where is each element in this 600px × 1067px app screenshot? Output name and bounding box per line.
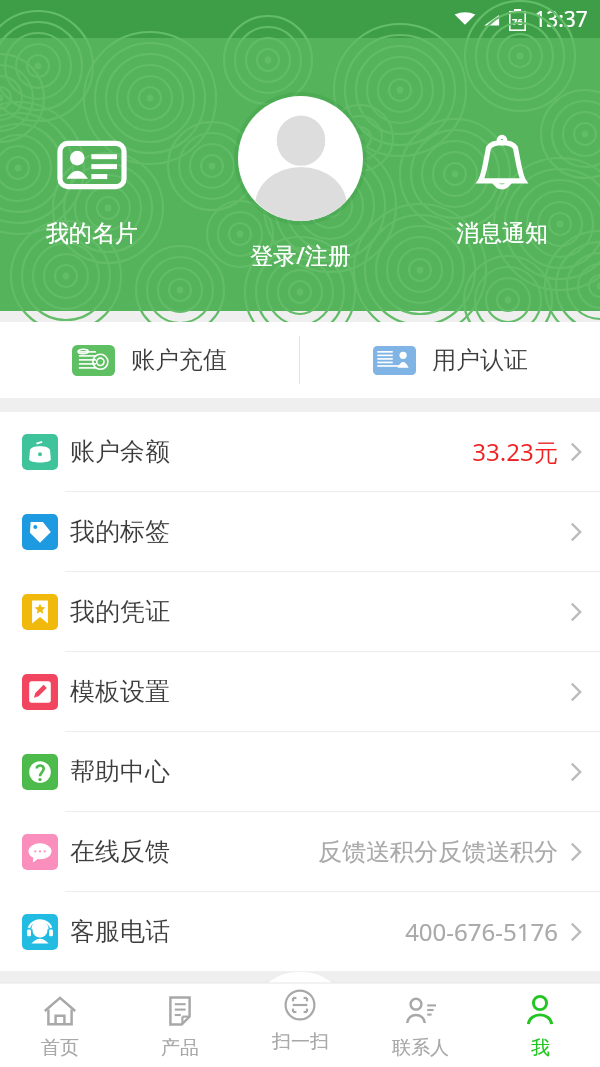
staticText: 账户充值 (131, 345, 227, 375)
staticText: 76 (512, 15, 523, 27)
staticText: 33.23元 (472, 435, 558, 468)
button[interactable]: 我 (480, 983, 600, 1067)
button[interactable]: 账户余额 (0, 412, 600, 491)
button[interactable]: 联系人 (360, 983, 480, 1067)
staticText: 产品 (161, 1036, 199, 1060)
button[interactable]: 模板设置 (0, 652, 600, 731)
button[interactable]: 客服电话 (0, 892, 600, 971)
button[interactable]: 账户充值 (0, 322, 299, 398)
button[interactable]: 产品 (120, 983, 240, 1067)
button[interactable]: 扫一扫 (240, 983, 360, 1067)
button[interactable]: 我的凭证 (0, 572, 600, 651)
staticText: 登录/注册 (250, 239, 351, 270)
staticText: 消息通知 (456, 219, 548, 248)
staticText: 反馈送积分反馈送积分 (318, 837, 558, 867)
staticText: 账户余额 (70, 436, 170, 467)
button[interactable]: 在线反馈 (0, 812, 600, 891)
button[interactable]: 我的标签 (0, 492, 600, 571)
staticText: 帮助中心 (70, 756, 170, 787)
button[interactable]: 帮助中心 (0, 732, 600, 811)
staticText: 首页 (41, 1036, 79, 1060)
staticText: 客服电话 (70, 916, 170, 947)
staticText: 联系人 (392, 1036, 449, 1060)
staticText: 我 (531, 1036, 550, 1060)
staticText: 模板设置 (70, 676, 170, 707)
button[interactable]: 首页 (0, 983, 120, 1067)
staticText: 我的标签 (70, 516, 170, 547)
staticText: 我的凭证 (70, 596, 170, 627)
button[interactable]: 我的名片 (46, 129, 138, 248)
staticText: 用户认证 (432, 345, 528, 375)
button[interactable]: 用户认证 (300, 322, 600, 398)
staticText: 我的名片 (46, 219, 138, 248)
staticText: 13:37 (534, 5, 588, 34)
button[interactable]: 消息通知 (456, 129, 548, 248)
staticText: 在线反馈 (70, 836, 170, 867)
staticText: 400-676-5176 (405, 915, 558, 948)
button[interactable]: 登录/注册 (234, 92, 367, 270)
staticText: 扫一扫 (272, 1030, 329, 1054)
